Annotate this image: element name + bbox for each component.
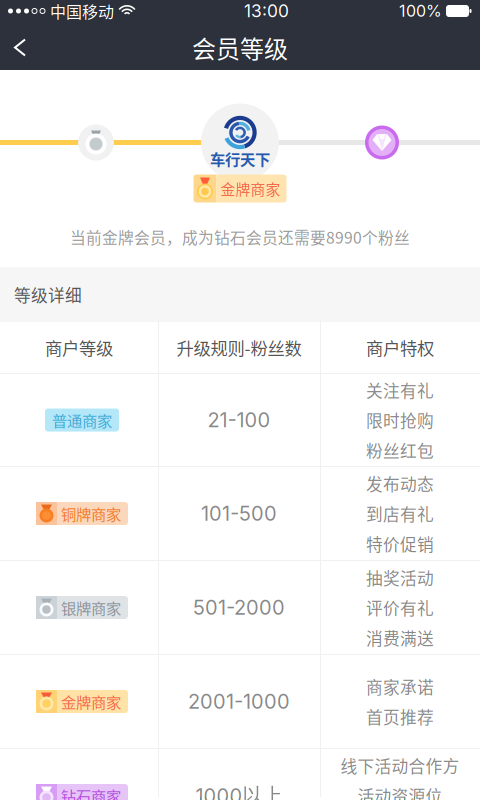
staticText: 升级规则-粉丝数 <box>176 335 301 360</box>
staticText: 金牌商家 <box>220 178 280 199</box>
button[interactable]: Back <box>0 25 44 69</box>
staticText: 会员等级 <box>192 30 288 65</box>
staticText: 关注有礼 <box>366 378 434 402</box>
staticText: 100% <box>399 1 442 21</box>
staticText: 普通商家 <box>52 409 112 431</box>
staticText: 首页推荐 <box>366 704 434 729</box>
staticText: 21-100 <box>207 408 270 432</box>
staticText: 钻石商家 <box>61 784 121 800</box>
staticText: 到店有礼 <box>366 501 434 525</box>
staticText: 粉丝红包 <box>366 438 434 462</box>
staticText: 13:00 <box>244 0 289 21</box>
staticText: 抽奖活动 <box>366 565 434 589</box>
staticText: 限时抢购 <box>366 408 434 432</box>
staticText: 501-2000 <box>193 595 285 620</box>
staticText: 消费满送 <box>366 626 434 650</box>
staticText: 线下活动合作方 <box>340 753 459 777</box>
staticText: 评价有礼 <box>366 595 434 619</box>
staticText: 车行天下 <box>210 147 270 170</box>
staticText: 商户等级 <box>45 335 113 360</box>
staticText: 发布动态 <box>366 471 434 495</box>
staticText: 1000以上 <box>195 783 282 800</box>
staticText: 金牌商家 <box>61 690 121 713</box>
staticText: 2001-1000 <box>188 689 290 714</box>
staticText: 银牌商家 <box>61 596 121 619</box>
staticText: 中国移动 <box>50 0 114 23</box>
staticText: 101-500 <box>201 501 277 526</box>
staticText: 商家承诺 <box>366 674 434 698</box>
staticText: 当前金牌会员，成为钻石会员还需要8990个粉丝 <box>70 226 410 248</box>
staticText: 特价促销 <box>366 532 434 556</box>
staticText: 等级详细 <box>14 282 82 306</box>
staticText: 铜牌商家 <box>61 502 121 525</box>
staticText: 商户特权 <box>366 335 434 360</box>
staticText: 活动资源位 <box>357 783 442 800</box>
